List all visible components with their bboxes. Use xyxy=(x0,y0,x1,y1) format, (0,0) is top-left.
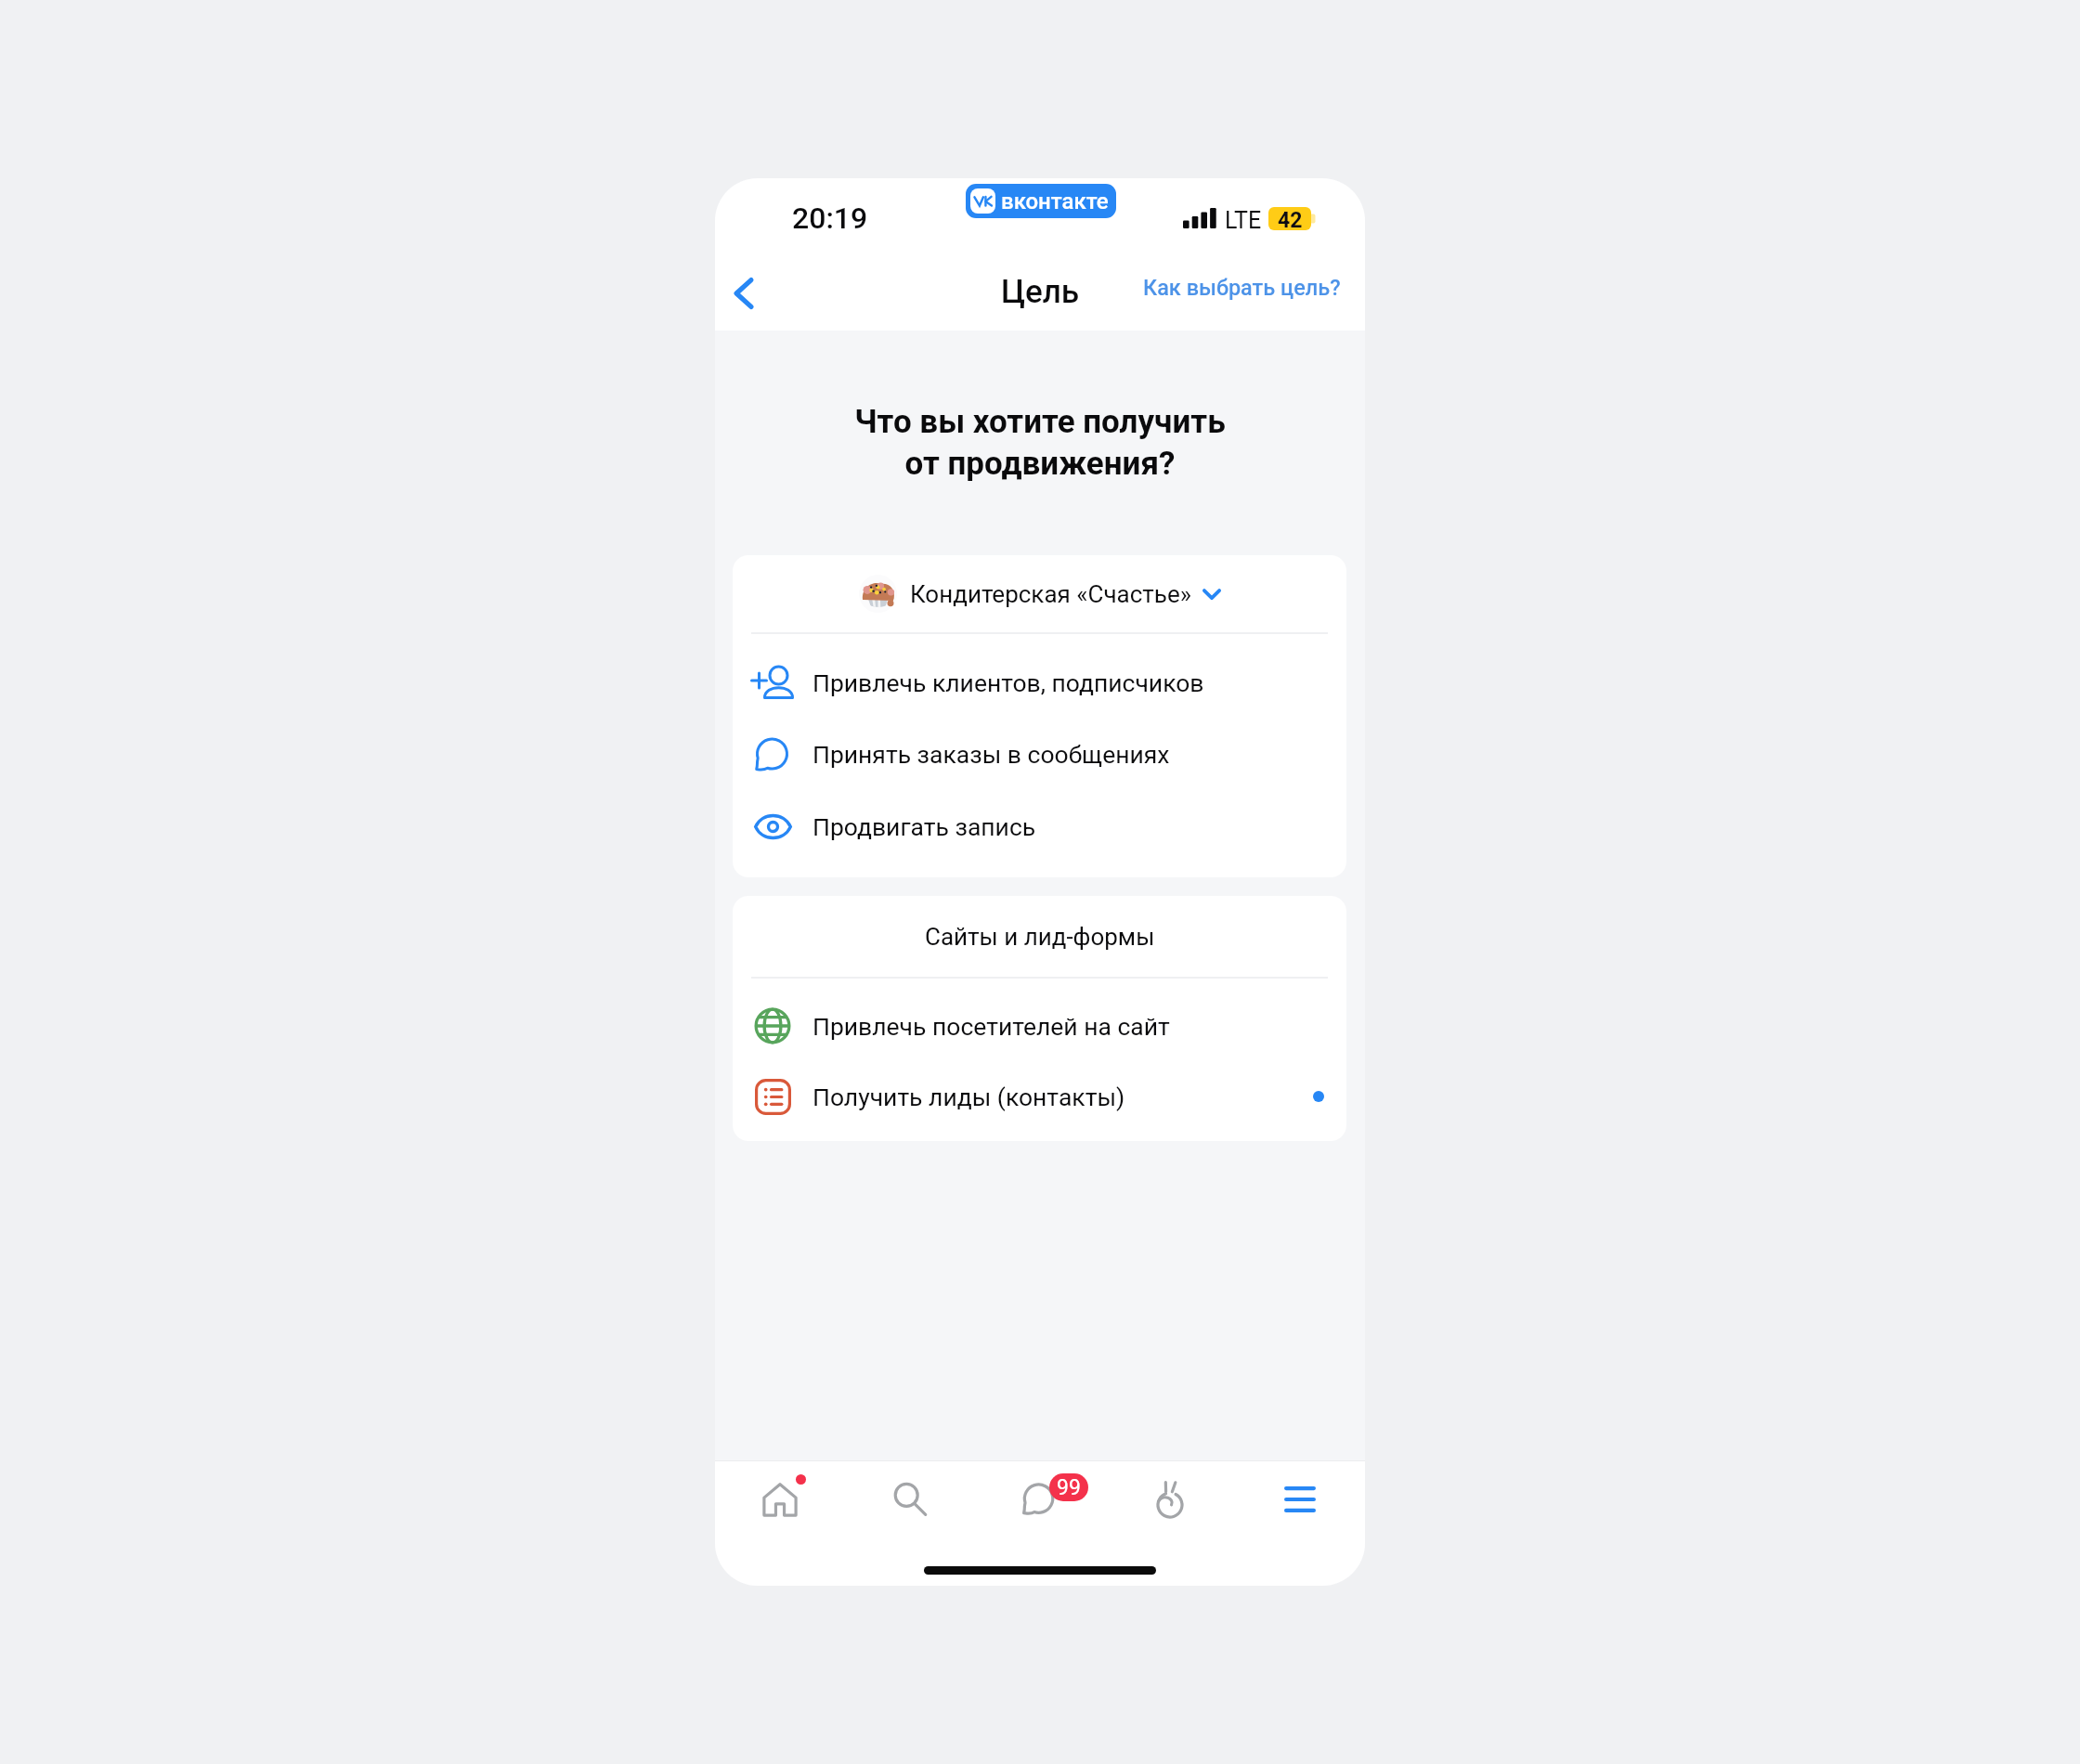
staticText: 20:19 xyxy=(792,201,868,236)
button[interactable]: Привлечь клиентов, подписчиков xyxy=(733,646,1346,719)
button[interactable]: Clips xyxy=(1105,1461,1235,1537)
staticText: Принять заказы в сообщениях xyxy=(812,740,1170,769)
staticText: Цель xyxy=(715,273,1365,311)
button[interactable]: Home xyxy=(715,1461,845,1537)
staticText: Получить лиды (контакты) xyxy=(812,1083,1125,1111)
staticText: LTE xyxy=(1225,207,1262,234)
staticText: Сайты и лид-формы xyxy=(925,923,1155,951)
staticText: 99 xyxy=(1057,1475,1081,1500)
button[interactable]: Search xyxy=(845,1461,975,1537)
button[interactable]: Привлечь посетителей на сайт xyxy=(733,990,1346,1062)
staticText: вконтакте xyxy=(1001,188,1109,214)
button[interactable]: Как выбрать цель? xyxy=(1136,266,1348,310)
staticText: Привлечь клиентов, подписчиков xyxy=(812,668,1204,697)
button[interactable]: Menu xyxy=(1235,1461,1365,1537)
button[interactable]: Кондитерская «Счастье» xyxy=(733,555,1346,632)
button[interactable]: Back xyxy=(715,265,773,322)
staticText: Продвигать запись xyxy=(812,812,1036,841)
staticText: 42 xyxy=(1278,208,1303,233)
staticText: Привлечь посетителей на сайт xyxy=(812,1012,1170,1041)
staticText: Как выбрать цель? xyxy=(1143,275,1341,301)
staticText: Что вы хотите получить от продвижения? xyxy=(715,403,1365,482)
staticText: Кондитерская «Счастье» xyxy=(910,580,1191,608)
button[interactable]: Продвигать запись xyxy=(733,790,1346,863)
button[interactable]: Принять заказы в сообщениях xyxy=(733,718,1346,790)
button[interactable]: Получить лиды (контакты) xyxy=(733,1060,1346,1133)
button[interactable]: Messages xyxy=(975,1461,1105,1537)
